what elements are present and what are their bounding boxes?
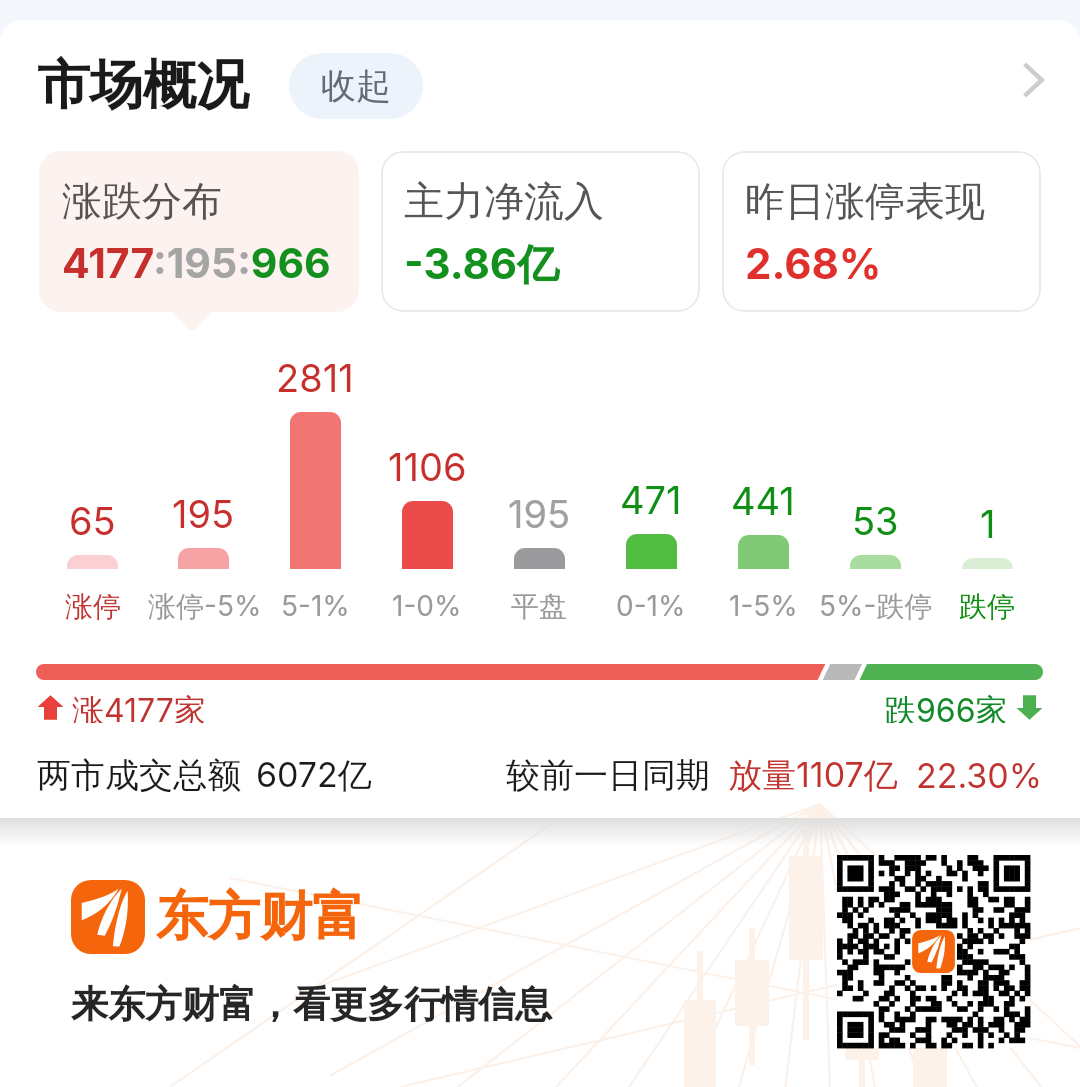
staticText: 涨跌分布	[62, 176, 222, 226]
staticText: 主力净流入	[404, 176, 604, 226]
staticText: 涨停-5%	[148, 589, 259, 624]
staticText: 2.68%	[745, 238, 882, 289]
staticText: 195	[172, 491, 235, 537]
staticText: 较前一日同期	[506, 754, 710, 797]
staticText: 471	[620, 477, 682, 523]
staticText: 1-5%	[729, 589, 798, 623]
button[interactable]: 主力净流入	[381, 151, 700, 312]
staticText: 跌966家	[884, 691, 1008, 723]
staticText: 涨停	[65, 589, 121, 624]
button[interactable]: 展开更多	[1001, 54, 1065, 118]
staticText: 5%-跌停	[819, 589, 931, 624]
button[interactable]: 昨日涨停表现	[722, 151, 1041, 312]
staticText: 53	[852, 498, 899, 544]
staticText: 5-1%	[281, 589, 350, 623]
staticText: -3.86亿	[404, 238, 560, 291]
button[interactable]: 涨跌分布	[39, 151, 359, 312]
staticText: 市场概况	[37, 52, 249, 119]
staticText: 收起	[321, 64, 391, 108]
staticText: 195	[508, 491, 571, 537]
staticText: 来东方财富，看更多行情信息	[71, 981, 552, 1028]
staticText: 1106	[388, 444, 467, 490]
staticText: 2811	[276, 355, 354, 401]
staticText: 65	[69, 498, 116, 544]
staticText: 1	[980, 501, 996, 547]
staticText: 441	[731, 478, 795, 524]
staticText: 昨日涨停表现	[745, 176, 985, 226]
staticText: 0-1%	[616, 589, 686, 623]
staticText: 放量1107亿	[728, 754, 898, 797]
staticText: 1-0%	[392, 589, 462, 623]
staticText: 东方财富	[156, 884, 364, 950]
button[interactable]: 收起	[289, 53, 423, 119]
staticText: 6072亿	[256, 754, 372, 797]
staticText: 涨4177家	[72, 691, 206, 723]
staticText: 跌停	[959, 589, 1015, 624]
staticText: 4177:195:966	[62, 238, 331, 288]
staticText: 两市成交总额	[37, 754, 241, 797]
staticText: 22.30%	[916, 755, 1043, 796]
staticText: 平盘	[511, 589, 567, 624]
